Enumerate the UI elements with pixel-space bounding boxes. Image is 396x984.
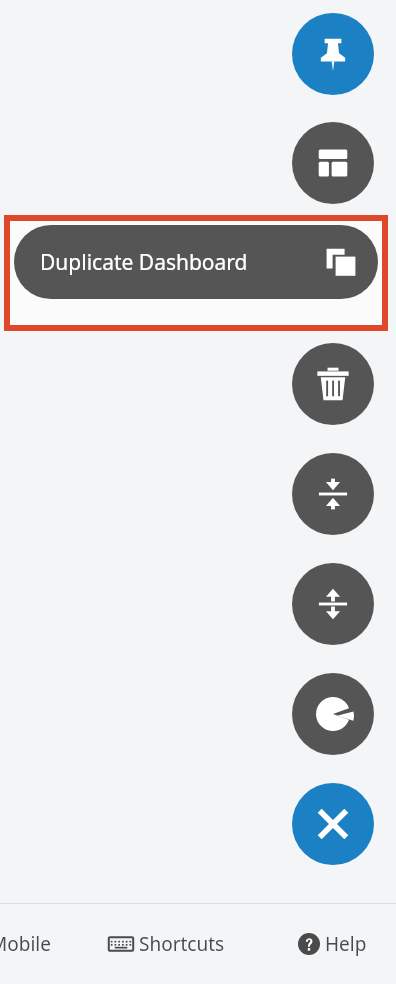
- button[interactable]: Pin dashboard: [292, 13, 374, 95]
- button[interactable]: Delete dashboard: [292, 343, 374, 425]
- button[interactable]: Collapse all: [292, 453, 374, 535]
- button[interactable]: Edit layout: [292, 122, 374, 204]
- staticText: Help: [325, 931, 367, 957]
- button[interactable]: Duplicate Dashboard: [14, 225, 378, 299]
- button[interactable]: Expand all: [292, 563, 374, 645]
- button[interactable]: Shortcuts: [104, 925, 229, 963]
- button[interactable]: Charts: [292, 673, 374, 755]
- staticText: Mobile: [0, 931, 51, 957]
- button[interactable]: Mobile: [0, 925, 55, 963]
- staticText: Duplicate Dashboard: [40, 248, 326, 277]
- button[interactable]: Help: [294, 925, 371, 963]
- button[interactable]: Close: [292, 783, 374, 865]
- staticText: Shortcuts: [139, 931, 225, 957]
